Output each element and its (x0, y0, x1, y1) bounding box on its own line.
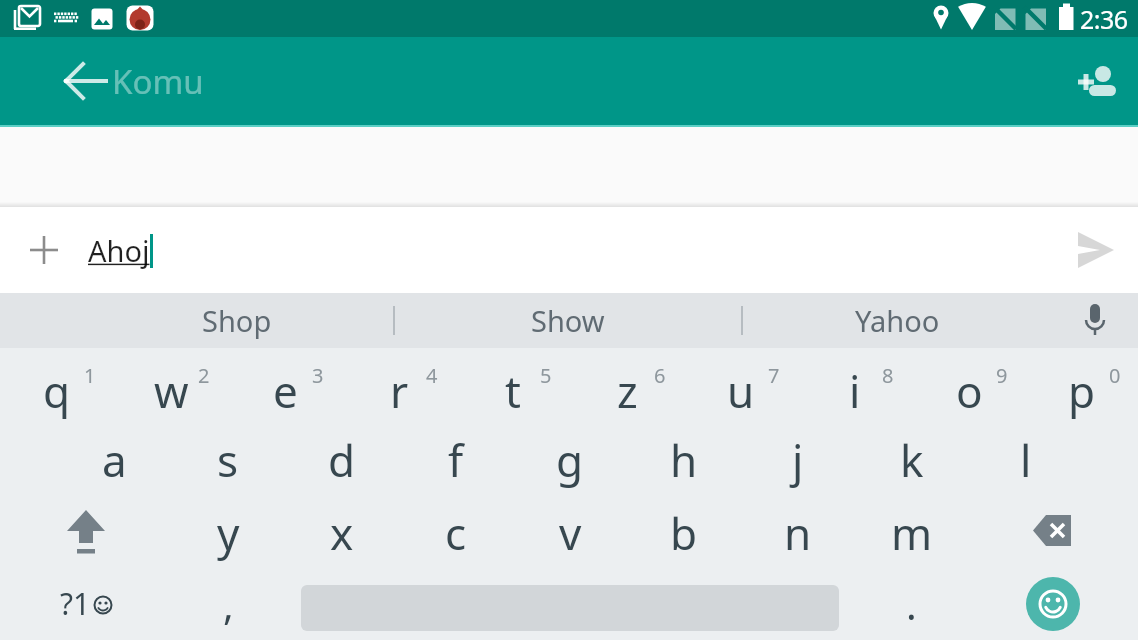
staticText: 1 (84, 362, 96, 389)
staticText: b (670, 503, 698, 563)
staticText: l (1020, 430, 1032, 490)
button[interactable]: z (570, 348, 684, 421)
button[interactable]: p (1026, 348, 1138, 421)
staticText: x (330, 503, 354, 563)
staticText: r (390, 361, 409, 421)
button[interactable] (20, 226, 68, 274)
button[interactable]: q (0, 348, 114, 421)
staticText: Ahoj (88, 231, 150, 270)
button[interactable] (968, 567, 1138, 640)
button[interactable]: n (741, 494, 855, 567)
button[interactable]: w (114, 348, 228, 421)
button[interactable]: f (399, 421, 513, 494)
staticText: k (900, 430, 924, 490)
button[interactable]: u (684, 348, 798, 421)
staticText: o (956, 361, 983, 421)
staticText: 3 (312, 362, 324, 389)
button[interactable]: x (285, 494, 399, 567)
button[interactable]: t (456, 348, 570, 421)
button[interactable]: . (854, 567, 968, 640)
button[interactable] (62, 57, 110, 105)
staticText: c (445, 503, 467, 563)
staticText: Yahoo (855, 301, 940, 340)
button[interactable] (1072, 57, 1120, 105)
staticText: u (727, 361, 755, 421)
button[interactable] (285, 567, 854, 640)
button[interactable]: a (57, 421, 171, 494)
staticText: . (906, 577, 917, 631)
staticText: n (784, 503, 812, 563)
button[interactable]: y (171, 494, 285, 567)
button[interactable]: l (969, 421, 1083, 494)
staticText: 8 (882, 362, 894, 389)
button[interactable]: c (399, 494, 513, 567)
button[interactable]: e (228, 348, 342, 421)
staticText: v (559, 503, 582, 563)
staticText: q (43, 361, 71, 421)
staticText: w (154, 361, 189, 421)
staticText: Shop (202, 301, 272, 340)
button[interactable] (969, 494, 1138, 567)
staticText: z (617, 361, 638, 421)
staticText: e (273, 361, 298, 421)
button[interactable]: d (285, 421, 399, 494)
button[interactable]: g (513, 421, 627, 494)
staticText: h (670, 430, 698, 490)
staticText: p (1068, 361, 1096, 421)
button[interactable]: h (627, 421, 741, 494)
staticText: 5 (540, 362, 552, 389)
staticText: s (217, 430, 239, 490)
staticText: d (328, 430, 356, 490)
button[interactable]: r (342, 348, 456, 421)
staticText: 2 (198, 362, 210, 389)
staticText: 4 (426, 362, 438, 389)
staticText: Show (531, 301, 605, 340)
staticText: , (223, 577, 234, 631)
button[interactable]: Shop (80, 293, 394, 348)
button[interactable] (1072, 226, 1120, 274)
button[interactable]: ?1 (0, 567, 171, 640)
button[interactable]: i (798, 348, 912, 421)
staticText: 0 (1109, 362, 1121, 389)
button[interactable]: Yahoo (742, 293, 1052, 348)
staticText: f (448, 430, 464, 490)
button[interactable]: v (513, 494, 627, 567)
staticText: g (556, 430, 584, 490)
button[interactable]: m (855, 494, 969, 567)
button[interactable]: b (627, 494, 741, 567)
staticText: j (792, 430, 804, 490)
staticText: 9 (996, 362, 1008, 389)
staticText: a (102, 430, 127, 490)
staticText: m (891, 503, 933, 563)
button[interactable]: j (741, 421, 855, 494)
staticText: y (217, 503, 240, 563)
staticText: 6 (654, 362, 666, 389)
button[interactable]: k (855, 421, 969, 494)
staticText: Komu (112, 59, 204, 104)
button[interactable]: Show (394, 293, 742, 348)
button[interactable]: , (171, 567, 285, 640)
button[interactable]: o (912, 348, 1026, 421)
button[interactable]: s (171, 421, 285, 494)
staticText: 7 (768, 362, 780, 389)
staticText: ?1 (60, 583, 91, 624)
staticText: t (505, 361, 521, 421)
button[interactable] (0, 494, 171, 567)
staticText: i (849, 361, 861, 421)
staticText: 2:36 (1080, 2, 1128, 36)
